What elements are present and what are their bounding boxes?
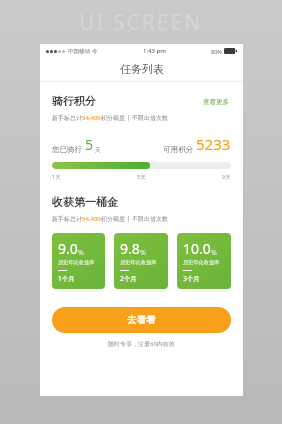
staticText: 收获第一桶金: [52, 195, 118, 209]
staticText: 新手标总计: [52, 215, 82, 223]
staticText: 积分额度: [101, 215, 125, 223]
staticText: 2个月: [120, 274, 137, 283]
staticText: %: [140, 248, 146, 258]
staticText: 去看看: [127, 314, 156, 326]
staticText: 天: [95, 146, 101, 154]
staticText: 5: [85, 135, 94, 154]
staticText: UI SCREEN: [79, 8, 203, 37]
staticText: 不限出借次数: [132, 114, 168, 122]
staticText: 10.0: [183, 239, 211, 258]
staticText: %: [78, 248, 84, 258]
staticText: 3个月: [183, 274, 200, 283]
staticText: 5天: [137, 173, 146, 181]
staticText: 9天: [222, 173, 231, 181]
staticText: 查看更多: [203, 98, 229, 106]
staticText: 令: [92, 48, 98, 55]
staticText: 随时专享，注册60内有效: [108, 340, 175, 348]
staticText: 1:43 pm: [143, 47, 166, 55]
staticText: 历史年化收益率: [120, 259, 157, 266]
staticText: 可用积分: [163, 145, 193, 154]
button[interactable]: 9.0: [52, 233, 105, 289]
staticText: 54,400: [82, 114, 101, 122]
staticText: 1天: [52, 173, 61, 181]
staticText: 积分额度: [101, 114, 125, 122]
staticText: 1个月: [58, 274, 75, 283]
staticText: 80%: [211, 48, 222, 55]
staticText: 历史年化收益率: [58, 259, 95, 266]
staticText: 9.8: [120, 239, 140, 258]
staticText: 中国移动: [68, 48, 90, 55]
button[interactable]: 去看看: [52, 307, 231, 333]
staticText: %: [211, 248, 217, 258]
staticText: 您已骑行: [52, 145, 82, 154]
staticText: 任务列表: [120, 62, 164, 76]
staticText: 历史年化收益率: [183, 259, 220, 266]
button[interactable]: 10.0: [177, 233, 231, 289]
button[interactable]: 9.8: [114, 233, 168, 289]
staticText: 9.0: [58, 239, 78, 258]
staticText: 5233: [196, 134, 231, 154]
button[interactable]: 查看更多: [201, 96, 231, 108]
staticText: 54,400: [82, 215, 101, 223]
staticText: 不限出借次数: [132, 215, 168, 223]
staticText: 骑行积分: [52, 94, 96, 108]
staticText: 新手标总计: [52, 114, 82, 122]
